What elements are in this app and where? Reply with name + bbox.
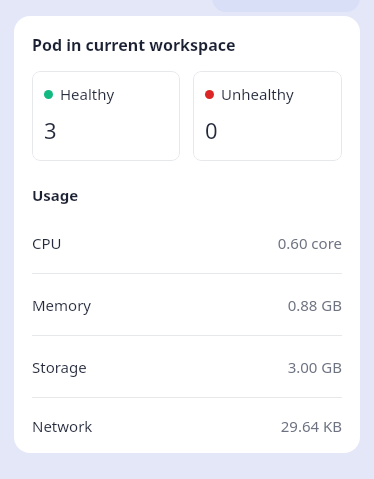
button[interactable]: Storage bbox=[32, 336, 342, 397]
button[interactable]: Healthy bbox=[32, 71, 180, 161]
staticText: Memory bbox=[32, 295, 92, 315]
staticText: Healthy bbox=[60, 84, 115, 104]
staticText: 29.64 KB bbox=[280, 416, 342, 436]
staticText: Network bbox=[32, 416, 93, 436]
button[interactable]: CPU bbox=[32, 212, 342, 273]
staticText: 0 bbox=[205, 115, 218, 145]
staticText: CPU bbox=[32, 233, 62, 253]
button[interactable]: Network bbox=[32, 398, 342, 453]
staticText: 3 bbox=[44, 115, 57, 145]
staticText: 3.00 GB bbox=[287, 357, 342, 377]
staticText: Pod in current workspace bbox=[32, 34, 236, 56]
button[interactable]: Memory bbox=[32, 274, 342, 335]
button[interactable]: Unhealthy bbox=[193, 71, 342, 161]
staticText: 0.88 GB bbox=[287, 295, 342, 315]
staticText: 0.60 core bbox=[277, 233, 342, 253]
staticText: Storage bbox=[32, 357, 87, 377]
staticText: Unhealthy bbox=[221, 84, 294, 104]
staticText: Usage bbox=[32, 185, 79, 205]
